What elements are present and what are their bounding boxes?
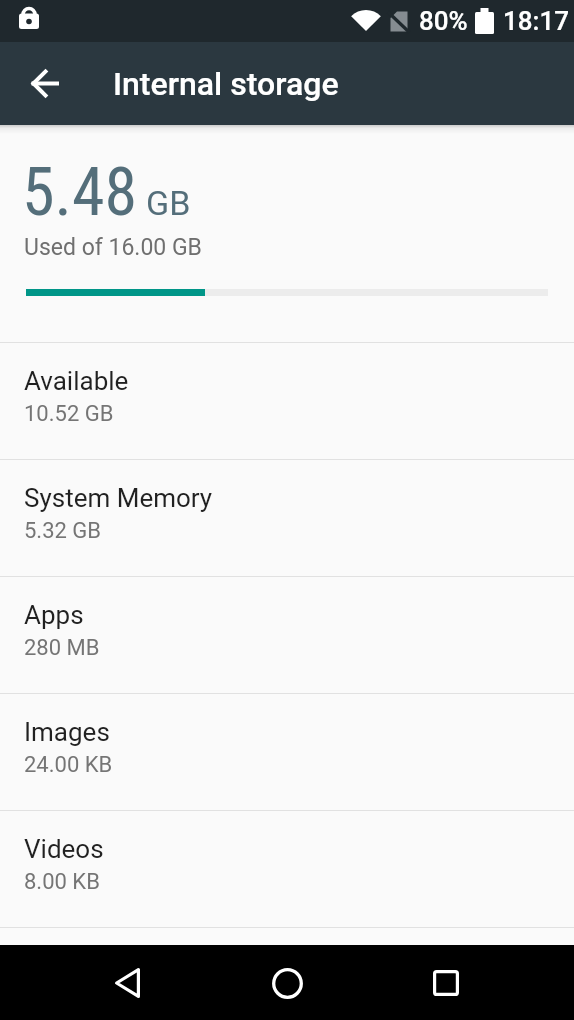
button[interactable]: Images [0, 694, 574, 810]
button[interactable] [17, 42, 73, 125]
staticText: Used of 16.00 GB [24, 234, 202, 261]
staticText: Internal storage [113, 65, 339, 103]
staticText: 80% [419, 6, 468, 36]
staticText: Apps [24, 600, 84, 630]
staticText: GB [146, 183, 191, 223]
staticText: 18:17 [503, 6, 570, 36]
staticText: System Memory [24, 483, 213, 513]
button[interactable] [103, 959, 151, 1007]
button[interactable] [263, 959, 311, 1007]
staticText: 24.00 KB [24, 752, 113, 778]
staticText: 280 MB [24, 635, 100, 661]
staticText: Videos [24, 834, 104, 864]
staticText: 8.00 KB [24, 869, 100, 895]
staticText: Available [24, 366, 129, 396]
staticText: Images [24, 717, 110, 747]
staticText: 5.48 [22, 154, 138, 231]
button[interactable]: Videos [0, 811, 574, 927]
button[interactable]: Apps [0, 577, 574, 693]
button[interactable] [422, 959, 470, 1007]
button[interactable]: System Memory [0, 460, 574, 576]
staticText: 5.32 GB [24, 518, 102, 544]
button[interactable]: Available [0, 343, 574, 459]
staticText: 10.52 GB [24, 401, 114, 427]
